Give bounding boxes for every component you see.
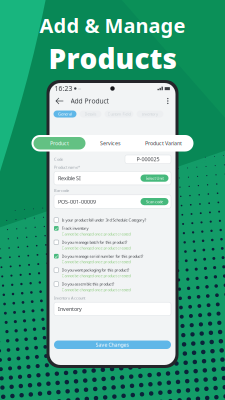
- staticText: Product: [50, 140, 69, 147]
- button[interactable]: Do you manage serial number for this pro…: [54, 253, 171, 264]
- staticText: ···: [78, 85, 81, 92]
- button[interactable]: Services: [85, 137, 135, 149]
- staticText: Add Product: [70, 97, 108, 105]
- staticText: Products: [48, 40, 176, 77]
- staticText: Cannot be changed once product created: [62, 287, 131, 292]
- button[interactable]: Do you want packaging for this product?: [54, 267, 171, 278]
- button[interactable]: Inventory: [136, 110, 163, 117]
- staticText: Product name*: [54, 164, 80, 170]
- staticText: Inventory: [58, 305, 82, 312]
- button[interactable]: Save Changes: [54, 340, 171, 349]
- staticText: Track inventory: [62, 226, 89, 231]
- staticText: Product Variant: [145, 140, 182, 147]
- button[interactable]: Is your product fall under 3rd Schedule …: [54, 217, 171, 223]
- button[interactable]: Select Unit: [140, 175, 168, 182]
- staticText: POS-001-00009: [58, 198, 96, 205]
- staticText: Custom Field: [107, 111, 130, 117]
- staticText: Scan code: [146, 199, 163, 204]
- staticText: 16:23: [54, 84, 72, 93]
- staticText: Cannot be changed once product created: [62, 245, 131, 250]
- staticText: Cannot be changed once product created: [62, 259, 131, 264]
- staticText: Rexible SI: [58, 175, 81, 182]
- button[interactable]: Track inventory: [54, 226, 171, 236]
- staticText: Inventory: [142, 111, 158, 117]
- staticText: Cannot be changed once product created: [62, 231, 131, 236]
- staticText: General: [58, 111, 72, 117]
- staticText: Details: [84, 111, 96, 117]
- staticText: Code: [54, 157, 63, 162]
- button[interactable]: Product Variant: [135, 137, 191, 149]
- button[interactable]: Custom Field: [104, 110, 133, 117]
- button[interactable]: More options: [163, 95, 172, 107]
- button[interactable]: General: [53, 110, 76, 117]
- staticText: Do you manage serial number for this pro…: [62, 253, 144, 259]
- button[interactable]: Do you manage batch for this product?: [54, 240, 171, 250]
- staticText: Do you assemble this product?: [62, 281, 115, 287]
- button[interactable]: Product: [33, 137, 85, 149]
- staticText: Do you manage batch for this product?: [62, 240, 128, 245]
- staticText: Select Unit: [145, 175, 163, 181]
- button[interactable]: Scan code: [140, 198, 168, 205]
- staticText: P-000025: [136, 156, 159, 163]
- staticText: Cannot be changed once product created: [62, 273, 131, 278]
- button[interactable]: Details: [79, 110, 101, 117]
- button[interactable]: Back: [52, 94, 66, 108]
- staticText: Do you want packaging for this product?: [62, 267, 130, 273]
- staticText: Inventory Account: [54, 295, 85, 301]
- staticText: Add & Manage: [39, 12, 185, 39]
- staticText: Barcode: [54, 188, 69, 193]
- staticText: Save Changes: [95, 341, 129, 348]
- staticText: Services: [100, 140, 121, 147]
- staticText: Is your product fall under 3rd Schedule …: [62, 217, 147, 223]
- button[interactable]: Do you assemble this product?: [54, 281, 171, 292]
